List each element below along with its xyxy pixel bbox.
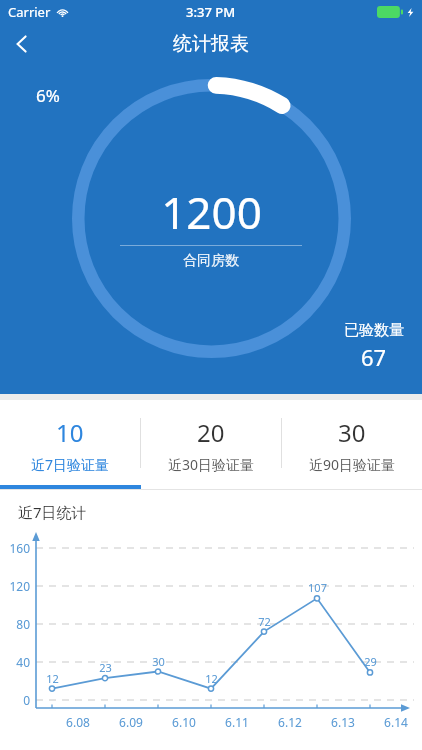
staticText: 6.11 [225,714,249,730]
staticText: 10 [56,416,84,449]
staticText: 6.12 [278,714,302,730]
staticText: 6% [36,84,60,107]
staticText: 12 [205,671,218,686]
staticText: 40 [16,654,30,670]
staticText: 80 [16,616,30,632]
staticText: 6.08 [66,714,90,730]
staticText: 67 [361,342,387,372]
staticText: 近90日验证量 [309,455,396,474]
staticText: 6.13 [331,714,355,730]
staticText: 6.10 [172,714,196,730]
staticText: 120 [9,578,30,594]
staticText: 6.14 [384,714,408,730]
staticText: 160 [9,540,30,556]
button[interactable]: 10 [0,400,140,490]
staticText: 合同房数 [183,252,239,270]
staticText: 近30日验证量 [168,455,255,474]
button[interactable]: 30 [282,400,422,490]
staticText: 3:37 PM [186,3,236,21]
staticText: 30 [338,416,366,449]
staticText: 29 [364,654,377,669]
staticText: 1200 [161,182,262,242]
button[interactable]: Back [0,24,44,64]
staticText: 20 [197,416,225,449]
staticText: 72 [258,614,271,629]
staticText: 107 [308,580,327,595]
button[interactable]: 20 [141,400,281,490]
staticText: 6.09 [119,714,143,730]
staticText: 已验数量 [344,321,404,340]
staticText: 12 [46,671,59,686]
staticText: 近7日验证量 [31,455,110,474]
staticText: 30 [152,654,165,669]
staticText: 23 [99,660,112,675]
staticText: Carrier [8,3,51,21]
staticText: 近7日统计 [18,502,87,522]
staticText: 0 [23,692,30,708]
staticText: 统计报表 [173,32,249,56]
